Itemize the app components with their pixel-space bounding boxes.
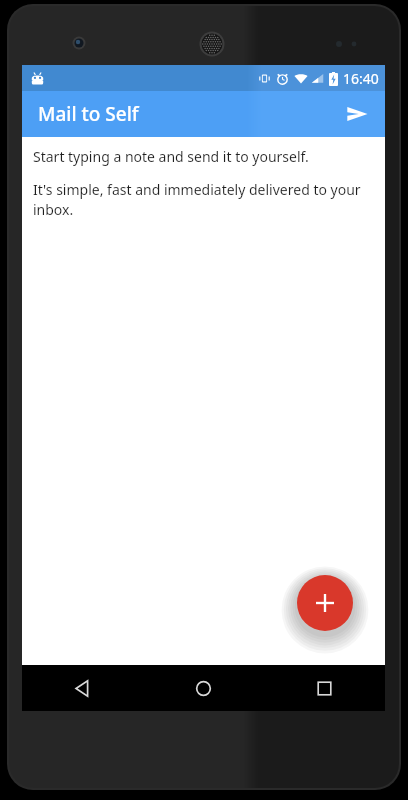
button[interactable]: New note <box>297 575 353 631</box>
staticText: It's simple, fast and immediately delive… <box>33 180 371 219</box>
button[interactable]: Send <box>337 94 377 134</box>
button[interactable]: Recent apps <box>264 665 385 711</box>
button[interactable]: Home <box>143 665 264 711</box>
staticText: Start typing a note and send it to yours… <box>33 147 309 166</box>
button[interactable]: Back <box>22 665 143 711</box>
staticText: 16:40 <box>343 69 379 88</box>
staticText: Mail to Self <box>38 101 139 127</box>
